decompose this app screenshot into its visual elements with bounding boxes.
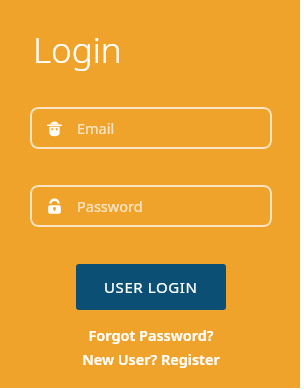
staticText: Password [77, 196, 143, 216]
staticText: Login [33, 26, 122, 74]
staticText: Email [77, 118, 115, 138]
staticText: USER LOGIN [104, 277, 198, 297]
button[interactable]: New User? Register [76, 348, 226, 370]
button[interactable]: Forgot Password? [82, 324, 220, 346]
staticText: New User? Register [82, 349, 220, 369]
staticText: Forgot Password? [88, 325, 214, 345]
button[interactable]: Password [30, 185, 272, 227]
button[interactable]: USER LOGIN [76, 264, 226, 310]
button[interactable]: Email [30, 107, 272, 149]
